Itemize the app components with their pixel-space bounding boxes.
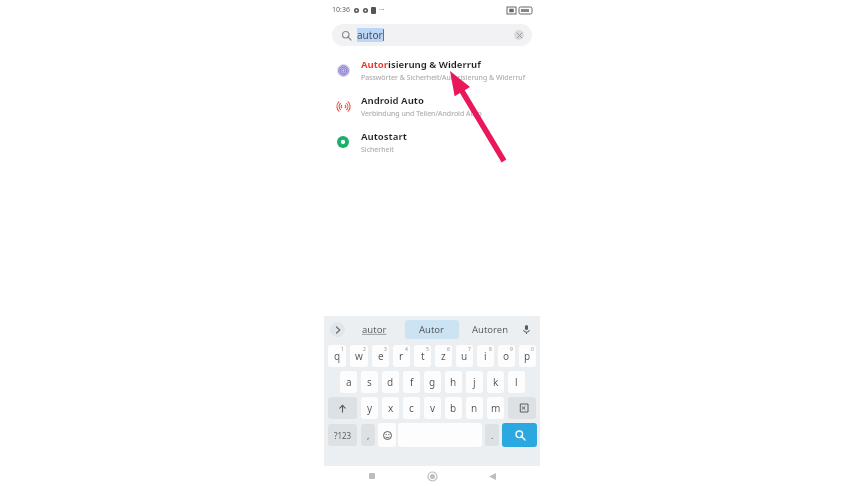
button[interactable]: o [498, 345, 515, 367]
button[interactable]: . [485, 424, 499, 446]
staticText: t [421, 349, 425, 363]
staticText: 10:36 [332, 5, 350, 15]
staticText: f [410, 375, 414, 389]
staticText: r [399, 349, 404, 363]
button[interactable]: s [361, 371, 378, 393]
button[interactable]: w [350, 345, 368, 367]
staticText: c [409, 401, 414, 415]
staticText: h [450, 375, 457, 389]
staticText: i [484, 349, 487, 363]
button[interactable]: a [340, 371, 357, 393]
staticText: Android Auto [361, 94, 424, 107]
staticText: y [367, 401, 373, 415]
staticText: e [378, 349, 384, 363]
staticText: 2 [363, 346, 366, 353]
button[interactable]: ?123 [328, 424, 357, 446]
staticText: d [387, 375, 394, 389]
button[interactable]: r [393, 345, 410, 367]
staticText: Autostart [361, 130, 407, 143]
button[interactable]: g [424, 371, 441, 393]
button[interactable]: Back [480, 466, 504, 486]
button[interactable]: Autorisierung & Widerruf [324, 52, 540, 88]
staticText: 4 [405, 346, 408, 353]
staticText: 0 [531, 346, 534, 353]
staticText: g [429, 375, 436, 389]
button[interactable]: k [487, 371, 504, 393]
button[interactable]: e [372, 345, 389, 367]
button[interactable]: h [445, 371, 462, 393]
button[interactable]: l [508, 371, 525, 393]
button[interactable]: Shift [328, 397, 357, 419]
button[interactable]: u [456, 345, 473, 367]
button[interactable]: t [414, 345, 431, 367]
staticText: Autor [419, 323, 445, 336]
button[interactable]: Autor [405, 320, 459, 339]
staticText: autor [357, 28, 383, 42]
staticText: 7 [468, 346, 471, 353]
staticText: Autoren [472, 323, 509, 336]
button[interactable]: Recents [360, 466, 384, 486]
staticText: u [461, 349, 468, 363]
button[interactable]: Autoren [469, 320, 512, 339]
button[interactable]: c [403, 397, 420, 419]
button[interactable]: z [435, 345, 452, 367]
staticText: v [430, 401, 436, 415]
button[interactable]: Home [420, 466, 444, 486]
staticText: ?123 [334, 430, 352, 441]
staticText: l [515, 375, 518, 389]
button[interactable]: f [403, 371, 420, 393]
staticText: ··· [379, 5, 385, 15]
staticText: 9 [510, 346, 513, 353]
button[interactable]: d [382, 371, 399, 393]
button[interactable]: j [466, 371, 483, 393]
staticText: n [471, 401, 478, 415]
button[interactable]: Voice input [519, 322, 534, 337]
staticText: Passwörter & Sicherheit/Autorisierung & … [361, 73, 526, 83]
button[interactable]: Autostart [324, 124, 540, 160]
button[interactable]: v [424, 397, 441, 419]
button[interactable]: Backspace [508, 397, 536, 419]
staticText: Autorisierung & Widerruf [361, 58, 481, 71]
button[interactable]: y [361, 397, 378, 419]
staticText: z [441, 349, 446, 363]
staticText: m [491, 401, 501, 415]
staticText: 5 [426, 346, 429, 353]
staticText: 6 [447, 346, 450, 353]
button[interactable]: Search [502, 423, 537, 447]
staticText: p [524, 349, 531, 363]
staticText: x [388, 401, 394, 415]
staticText: . [491, 429, 494, 441]
staticText: w [355, 349, 363, 363]
staticText: b [450, 401, 457, 415]
button[interactable]: n [466, 397, 483, 419]
staticText: , [367, 429, 370, 441]
button[interactable]: Emoji [378, 423, 396, 447]
staticText: k [493, 375, 499, 389]
staticText: s [367, 375, 372, 389]
staticText: o [503, 349, 510, 363]
button[interactable]: Clear [514, 30, 524, 40]
staticText: Sicherheit [361, 145, 394, 155]
button[interactable]: q [328, 345, 346, 367]
staticText: j [473, 375, 476, 389]
staticText: 1 [341, 346, 344, 353]
button[interactable]: autor [332, 24, 532, 46]
button[interactable]: b [445, 397, 462, 419]
button[interactable]: x [382, 397, 399, 419]
button[interactable]: autor [359, 320, 390, 339]
staticText: autor [362, 323, 387, 336]
button[interactable]: Expand [330, 322, 345, 337]
button[interactable]: m [487, 397, 504, 419]
staticText: a [346, 375, 352, 389]
button[interactable]: Android Auto [324, 88, 540, 124]
button[interactable]: p [519, 345, 536, 367]
staticText: q [334, 349, 341, 363]
staticText: Verbindung und Teilen/Android Auto [361, 109, 482, 119]
button[interactable]: , [361, 424, 375, 446]
staticText: 3 [384, 346, 387, 353]
button[interactable]: i [477, 345, 494, 367]
staticText: 8 [489, 346, 492, 353]
